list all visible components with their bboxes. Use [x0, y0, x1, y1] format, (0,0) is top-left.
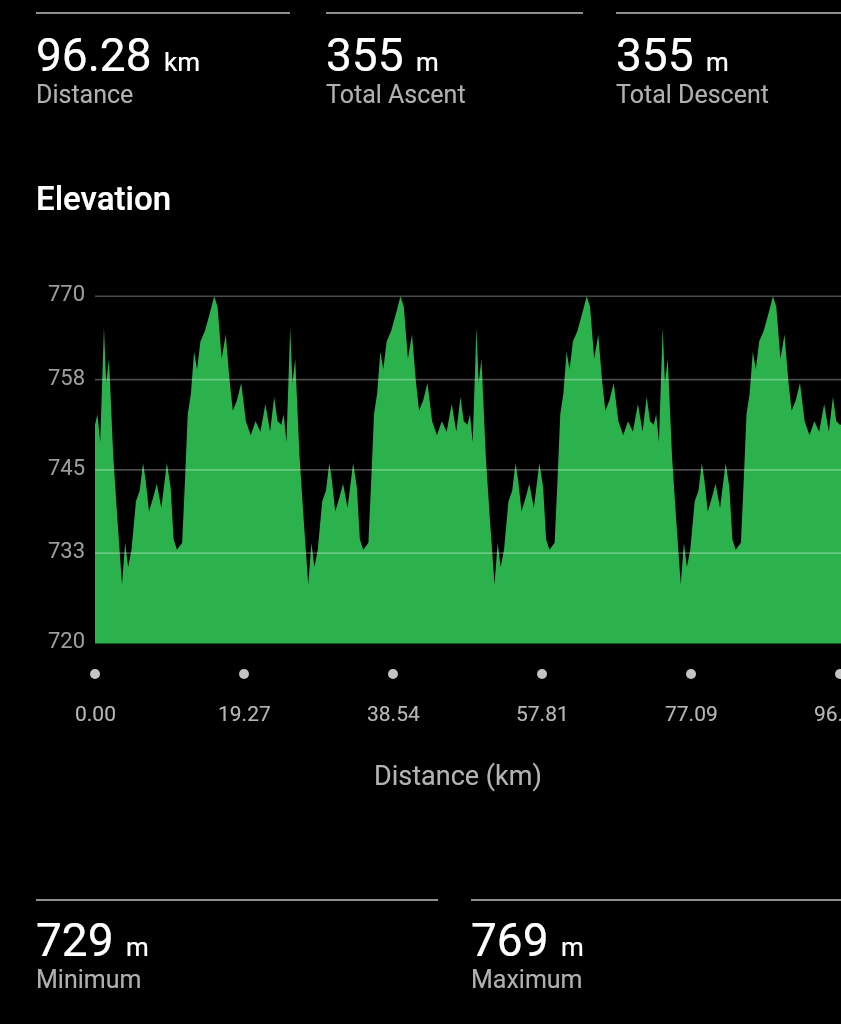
staticText: m	[561, 932, 584, 962]
staticText: 745	[48, 455, 86, 481]
staticText: 758	[48, 365, 86, 391]
staticText: 355	[326, 28, 404, 82]
staticText: Maximum	[471, 965, 583, 994]
button[interactable]: 355	[616, 12, 841, 111]
staticText: 729	[36, 913, 114, 967]
button[interactable]: 769	[471, 899, 841, 996]
staticText: Distance (km)	[374, 760, 542, 792]
staticText: m	[416, 47, 439, 77]
staticText: 77.09	[665, 702, 718, 727]
staticText: 96.28	[36, 28, 152, 82]
staticText: 19.27	[218, 702, 271, 727]
staticText: 57.81	[516, 702, 569, 727]
button[interactable]: 96.28	[36, 12, 326, 111]
button[interactable]: 355	[326, 12, 616, 111]
staticText: Minimum	[36, 965, 142, 994]
staticText: 769	[471, 913, 549, 967]
staticText: km	[164, 47, 200, 77]
staticText: Total Ascent	[326, 80, 466, 109]
staticText: 38.54	[367, 702, 420, 727]
staticText: 355	[616, 28, 694, 82]
staticText: Elevation	[36, 179, 172, 218]
staticText: Distance	[36, 80, 134, 109]
staticText: 720	[48, 628, 86, 654]
staticText: 0.00	[75, 702, 116, 727]
button[interactable]: 729	[36, 899, 471, 996]
staticText: 733	[48, 538, 86, 564]
staticText: m	[706, 47, 729, 77]
staticText: m	[126, 932, 149, 962]
staticText: 96.28	[814, 702, 841, 727]
staticText: 770	[48, 281, 86, 307]
staticText: Total Descent	[616, 80, 769, 109]
